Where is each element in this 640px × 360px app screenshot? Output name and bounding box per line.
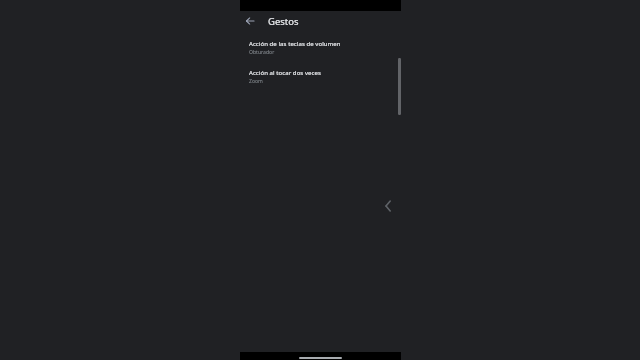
staticText: Acción al tocar dos veces [249, 69, 321, 77]
button[interactable]: Acción de las teclas de volumen [238, 33, 402, 62]
staticText: Gestos [268, 15, 299, 28]
staticText: Acción de las teclas de volumen [249, 40, 341, 48]
button[interactable]: Back gesture [383, 199, 393, 213]
button[interactable]: Back [242, 13, 258, 29]
staticText: Zoom [249, 78, 263, 85]
button[interactable]: Acción al tocar dos veces [238, 62, 402, 91]
staticText: Obturador [249, 49, 275, 56]
